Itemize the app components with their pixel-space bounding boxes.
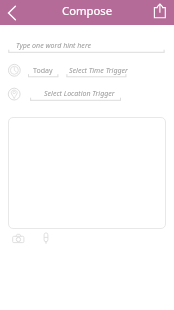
button[interactable]: Back bbox=[0, 0, 25, 25]
button[interactable]: Type one word hint here bbox=[0, 38, 174, 54]
staticText: Today bbox=[33, 65, 53, 75]
button[interactable]: Share bbox=[149, 0, 174, 25]
staticText: Select Location Trigger bbox=[44, 88, 115, 98]
staticText: Type one word hint here bbox=[16, 40, 92, 50]
button[interactable]: Today bbox=[26, 62, 60, 79]
button[interactable]: Microphone bbox=[36, 230, 56, 250]
staticText: Compose bbox=[62, 3, 113, 18]
button[interactable]: Select Location Trigger bbox=[30, 86, 121, 103]
staticText: Select Time Trigger bbox=[69, 65, 128, 75]
button[interactable]: Location trigger bbox=[6, 86, 23, 103]
button[interactable]: Time trigger bbox=[6, 62, 23, 79]
button[interactable]: Select Time Trigger bbox=[59, 62, 135, 79]
button[interactable]: Camera bbox=[9, 230, 29, 250]
button[interactable]: Note body bbox=[8, 117, 166, 229]
